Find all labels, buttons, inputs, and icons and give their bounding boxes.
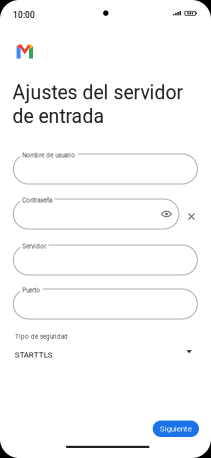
button[interactable]: Contraseña	[13, 199, 179, 229]
button[interactable]: Servidor	[13, 245, 197, 275]
staticText: Servidor	[22, 243, 46, 250]
staticText: Contraseña	[22, 197, 52, 204]
staticText: Tipo de seguridad	[15, 333, 68, 340]
button[interactable]: Tipo de seguridad	[13, 333, 197, 367]
staticText: Puerto	[22, 287, 40, 294]
button[interactable]: Clear password	[188, 213, 195, 220]
button[interactable]: Puerto	[13, 289, 197, 319]
staticText: 10:00	[13, 10, 35, 20]
button[interactable]: Nombre de usuario	[13, 154, 197, 184]
staticText: Siguiente	[160, 424, 192, 433]
staticText: STARTTLS	[15, 350, 53, 360]
staticText: Nombre de usuario	[22, 152, 75, 159]
button[interactable]: Siguiente	[153, 420, 199, 437]
staticText: Ajustes del servidor de entrada	[13, 81, 184, 128]
